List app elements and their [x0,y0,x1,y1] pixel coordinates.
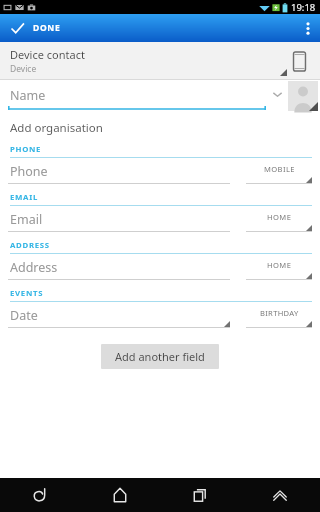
staticText: HOME [267,212,292,222]
staticText: HOME [267,260,292,270]
staticText: BIRTHDAY [260,308,299,318]
button[interactable]: Add another field [101,344,219,369]
staticText: EMAIL [10,192,39,203]
staticText: Date [10,307,38,324]
staticText: PHONE [10,144,42,155]
staticText: Email [10,211,43,228]
button[interactable]: Date [8,304,230,328]
button[interactable]: HOME [246,208,312,232]
staticText: EVENTS [10,288,44,299]
staticText: Name [10,87,46,104]
button[interactable]: Address [8,256,230,280]
staticText: MOBILE [264,164,295,174]
staticText: ADDRESS [10,240,50,251]
button[interactable]: Hide keyboard [240,478,320,512]
button[interactable]: BIRTHDAY [246,304,312,328]
staticText: Phone [10,163,48,180]
button[interactable]: Expand name fields [270,87,285,102]
button[interactable]: More options [296,14,320,42]
staticText: DONE [33,22,61,34]
staticText: 19:18 [291,1,316,14]
button[interactable]: Home [80,478,160,512]
button[interactable]: MOBILE [246,160,312,184]
button[interactable]: HOME [246,256,312,280]
button[interactable]: Email [8,208,230,232]
button[interactable]: Name [8,83,266,110]
button[interactable]: Device contact [0,42,320,80]
button[interactable]: DONE [0,14,71,42]
button[interactable]: Add contact photo [288,81,318,111]
button[interactable]: Back [0,478,80,512]
staticText: Address [10,259,58,276]
button[interactable]: Recent apps [160,478,240,512]
staticText: Add another field [115,349,205,364]
button[interactable]: Phone [8,160,230,184]
staticText: Device [10,63,37,75]
staticText: Add organisation [10,120,103,136]
button[interactable]: Add organisation [0,117,320,139]
staticText: Device contact [10,47,85,62]
